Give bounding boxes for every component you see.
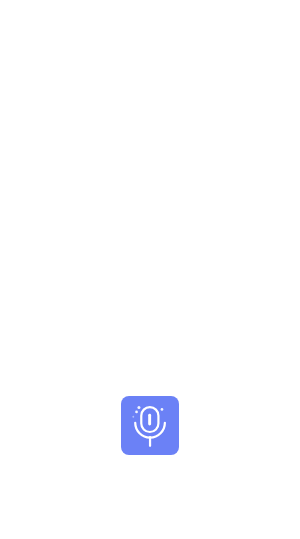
button[interactable]: Voice assistant	[121, 396, 179, 455]
